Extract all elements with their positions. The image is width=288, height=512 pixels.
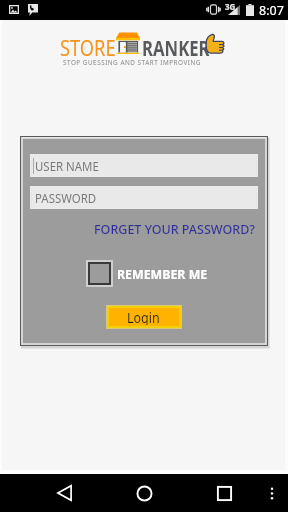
staticText: 8:07 bbox=[259, 2, 284, 19]
staticText: STORE bbox=[60, 32, 116, 62]
button[interactable]: More options bbox=[258, 474, 286, 512]
staticText: FORGET YOUR PASSWORD? bbox=[94, 221, 255, 238]
staticText: REMEMBER ME bbox=[117, 265, 207, 283]
button[interactable]: REMEMBER ME bbox=[86, 260, 212, 287]
staticText: USER NAME bbox=[35, 157, 99, 175]
button[interactable]: Recent apps bbox=[201, 474, 247, 512]
button[interactable]: Login bbox=[109, 308, 179, 326]
staticText: 3G bbox=[225, 1, 236, 12]
staticText: STOP GUESSING AND START IMPROVING bbox=[63, 58, 201, 67]
staticText: Login bbox=[127, 307, 160, 325]
button[interactable]: FORGET YOUR PASSWORD? bbox=[93, 220, 255, 238]
staticText: RANKER bbox=[142, 32, 210, 62]
staticText: PASSWORD bbox=[35, 189, 97, 207]
button[interactable]: Home bbox=[121, 474, 167, 512]
button[interactable]: Back bbox=[41, 474, 87, 512]
button[interactable]: USER NAME bbox=[30, 154, 258, 177]
button[interactable]: PASSWORD bbox=[30, 186, 258, 209]
